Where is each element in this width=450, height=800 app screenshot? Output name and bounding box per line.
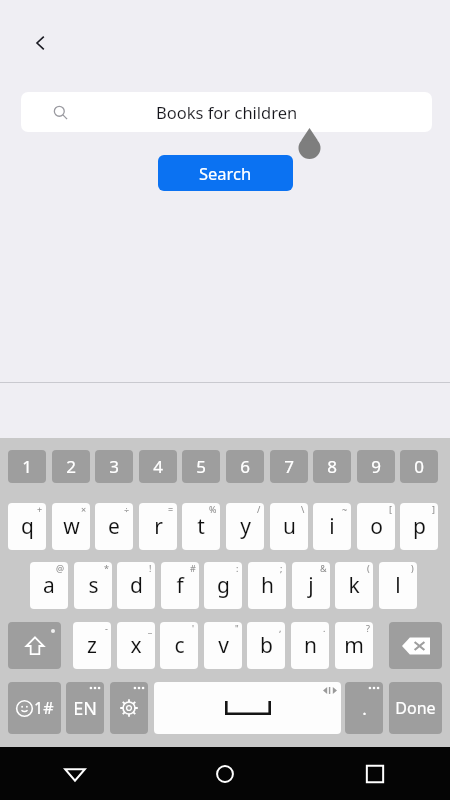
- staticText: ~: [342, 503, 348, 515]
- staticText: c: [174, 631, 185, 660]
- staticText: @: [56, 562, 65, 574]
- button[interactable]: Backspace: [389, 622, 442, 669]
- staticText: d: [130, 571, 143, 600]
- button[interactable]: r: [139, 503, 177, 550]
- button[interactable]: f: [161, 562, 199, 609]
- staticText: /: [257, 503, 261, 515]
- staticText: 8: [327, 455, 337, 478]
- staticText: o: [370, 512, 383, 541]
- staticText: a: [43, 571, 55, 600]
- staticText: ]: [432, 503, 435, 515]
- staticText: z: [87, 631, 97, 660]
- button[interactable]: o: [357, 503, 395, 550]
- button[interactable]: c: [160, 622, 198, 669]
- staticText: 0: [414, 455, 424, 478]
- button[interactable]: EN: [66, 682, 104, 734]
- staticText: y: [240, 512, 251, 541]
- button[interactable]: l: [379, 562, 417, 609]
- button[interactable]: g: [204, 562, 242, 609]
- button[interactable]: Back: [0, 747, 150, 800]
- staticText: .: [323, 622, 326, 634]
- staticText: u: [283, 512, 296, 541]
- staticText: \: [301, 503, 305, 515]
- staticText: t: [197, 512, 205, 541]
- button[interactable]: Done: [389, 682, 442, 734]
- button[interactable]: Shift: [8, 622, 61, 669]
- staticText: :: [236, 562, 239, 574]
- button[interactable]: k: [335, 562, 373, 609]
- staticText: 4: [153, 455, 163, 478]
- staticText: Books for children: [156, 101, 298, 123]
- button[interactable]: Back: [22, 24, 60, 62]
- staticText: %: [209, 503, 217, 515]
- button[interactable]: t: [182, 503, 220, 550]
- staticText: *: [104, 562, 109, 574]
- button[interactable]: z: [73, 622, 111, 669]
- staticText: b: [260, 631, 273, 660]
- button[interactable]: Books for children: [21, 92, 432, 132]
- staticText: #: [190, 562, 196, 574]
- staticText: j: [308, 571, 314, 600]
- button[interactable]: Keyboard settings: [110, 682, 148, 734]
- button[interactable]: Home: [150, 747, 300, 800]
- button[interactable]: p: [400, 503, 438, 550]
- staticText: g: [217, 571, 230, 600]
- button[interactable]: 3: [95, 450, 133, 483]
- button[interactable]: n: [291, 622, 329, 669]
- staticText: f: [176, 571, 184, 600]
- staticText: w: [63, 512, 80, 541]
- staticText: v: [218, 631, 229, 660]
- staticText: 7: [284, 455, 294, 478]
- button[interactable]: Search: [158, 155, 293, 191]
- button[interactable]: m: [335, 622, 373, 669]
- staticText: ): [411, 562, 414, 574]
- staticText: p: [413, 512, 426, 541]
- button[interactable]: y: [226, 503, 264, 550]
- button[interactable]: Symbols and emoji: [8, 682, 61, 734]
- button[interactable]: v: [204, 622, 242, 669]
- staticText: &: [320, 562, 327, 574]
- staticText: [: [389, 503, 392, 515]
- button[interactable]: q: [8, 503, 46, 550]
- button[interactable]: b: [247, 622, 285, 669]
- staticText: _: [148, 622, 152, 634]
- button[interactable]: 8: [313, 450, 351, 483]
- button[interactable]: i: [313, 503, 351, 550]
- button[interactable]: w: [52, 503, 90, 550]
- button[interactable]: .: [345, 682, 383, 734]
- staticText: 1: [22, 455, 32, 478]
- staticText: e: [108, 512, 120, 541]
- staticText: ,: [279, 622, 282, 634]
- staticText: ×: [81, 503, 87, 515]
- staticText: k: [348, 571, 360, 600]
- button[interactable]: e: [95, 503, 133, 550]
- button[interactable]: 6: [226, 450, 264, 483]
- button[interactable]: 9: [357, 450, 395, 483]
- button[interactable]: 4: [139, 450, 177, 483]
- button[interactable]: 5: [182, 450, 220, 483]
- staticText: 1#: [34, 697, 54, 719]
- button[interactable]: h: [248, 562, 286, 609]
- staticText: 5: [196, 455, 206, 478]
- staticText: Search: [199, 162, 252, 184]
- staticText: l: [395, 571, 401, 600]
- button[interactable]: 7: [270, 450, 308, 483]
- staticText: 6: [240, 455, 250, 478]
- button[interactable]: d: [117, 562, 155, 609]
- button[interactable]: Space: [154, 682, 341, 734]
- button[interactable]: j: [292, 562, 330, 609]
- button[interactable]: 2: [52, 450, 90, 483]
- button[interactable]: u: [270, 503, 308, 550]
- staticText: i: [329, 512, 335, 541]
- button[interactable]: s: [74, 562, 112, 609]
- button[interactable]: 0: [400, 450, 438, 483]
- button[interactable]: 1: [8, 450, 46, 483]
- button[interactable]: x: [117, 622, 155, 669]
- staticText: ;: [280, 562, 283, 574]
- staticText: h: [261, 571, 274, 600]
- staticText: +: [37, 503, 43, 515]
- button[interactable]: a: [30, 562, 68, 609]
- button[interactable]: Recents: [300, 747, 450, 800]
- staticText: 9: [371, 455, 381, 478]
- staticText: =: [168, 503, 174, 515]
